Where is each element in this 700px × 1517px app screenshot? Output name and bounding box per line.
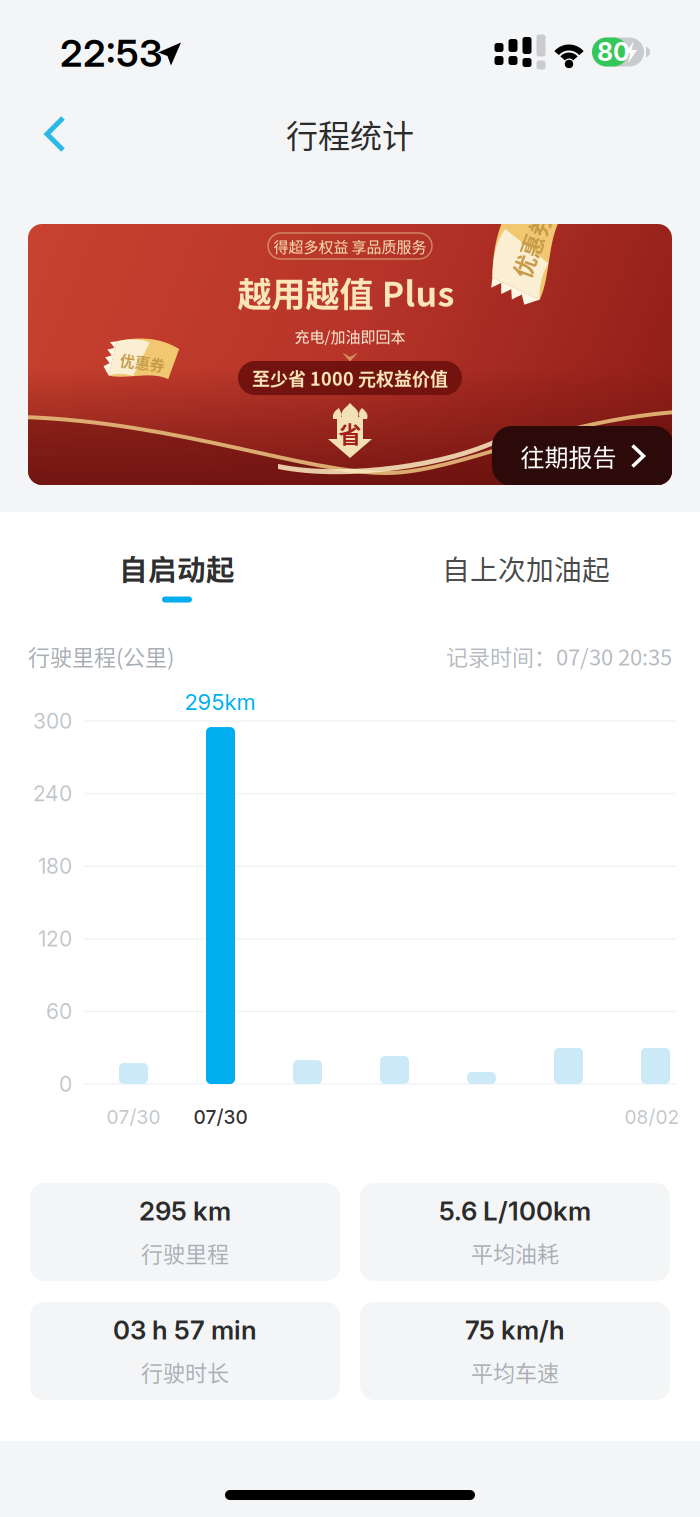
staticText: 07/30 [193,1105,247,1128]
staticText: 240 [33,781,72,806]
staticText: 优惠券 [500,235,566,267]
staticText: 300 [33,708,72,734]
staticText: 得超多权益 享品质服务 [273,235,426,257]
staticText: 180 [38,853,72,879]
staticText: 充电/加油即回本 [294,325,405,347]
staticText: 平均油耗 [471,1237,559,1269]
button[interactable]: Back [19,98,91,170]
staticText: 省 [338,416,361,450]
staticText: 60 [46,999,72,1024]
staticText: 越用越值 Plus [237,267,454,317]
button[interactable]: 优惠券 [28,224,672,485]
staticText: 08/02 [624,1105,679,1128]
staticText: 75 km/h [465,1314,565,1346]
staticText: 0 [59,1071,72,1097]
staticText: 07/30 [106,1105,160,1128]
staticText: 自上次加油起 [442,548,610,588]
staticText: 记录时间：07/30 20:35 [446,640,672,672]
staticText: 行程统计 [286,111,414,157]
staticText: 80 [597,37,630,67]
staticText: 295km [184,689,255,715]
button[interactable]: 自上次加油起 [356,512,696,598]
staticText: 5.6 L/100km [439,1195,591,1227]
staticText: 平均车速 [471,1356,559,1388]
staticText: 行驶里程 [141,1237,229,1269]
staticText: 往期报告 [520,439,616,473]
staticText: 120 [38,926,72,951]
staticText: 优惠券 [121,350,166,372]
staticText: 至少省 1000 元权益价值 [252,365,448,391]
staticText: 行驶里程(公里) [28,640,174,672]
staticText: 22:53 [60,30,162,76]
button[interactable]: 自启动起 [22,512,332,598]
staticText: 行驶时长 [141,1356,229,1388]
staticText: 自启动起 [119,547,235,589]
staticText: 03 h 57 min [113,1314,257,1346]
staticText: 295 km [139,1195,231,1227]
